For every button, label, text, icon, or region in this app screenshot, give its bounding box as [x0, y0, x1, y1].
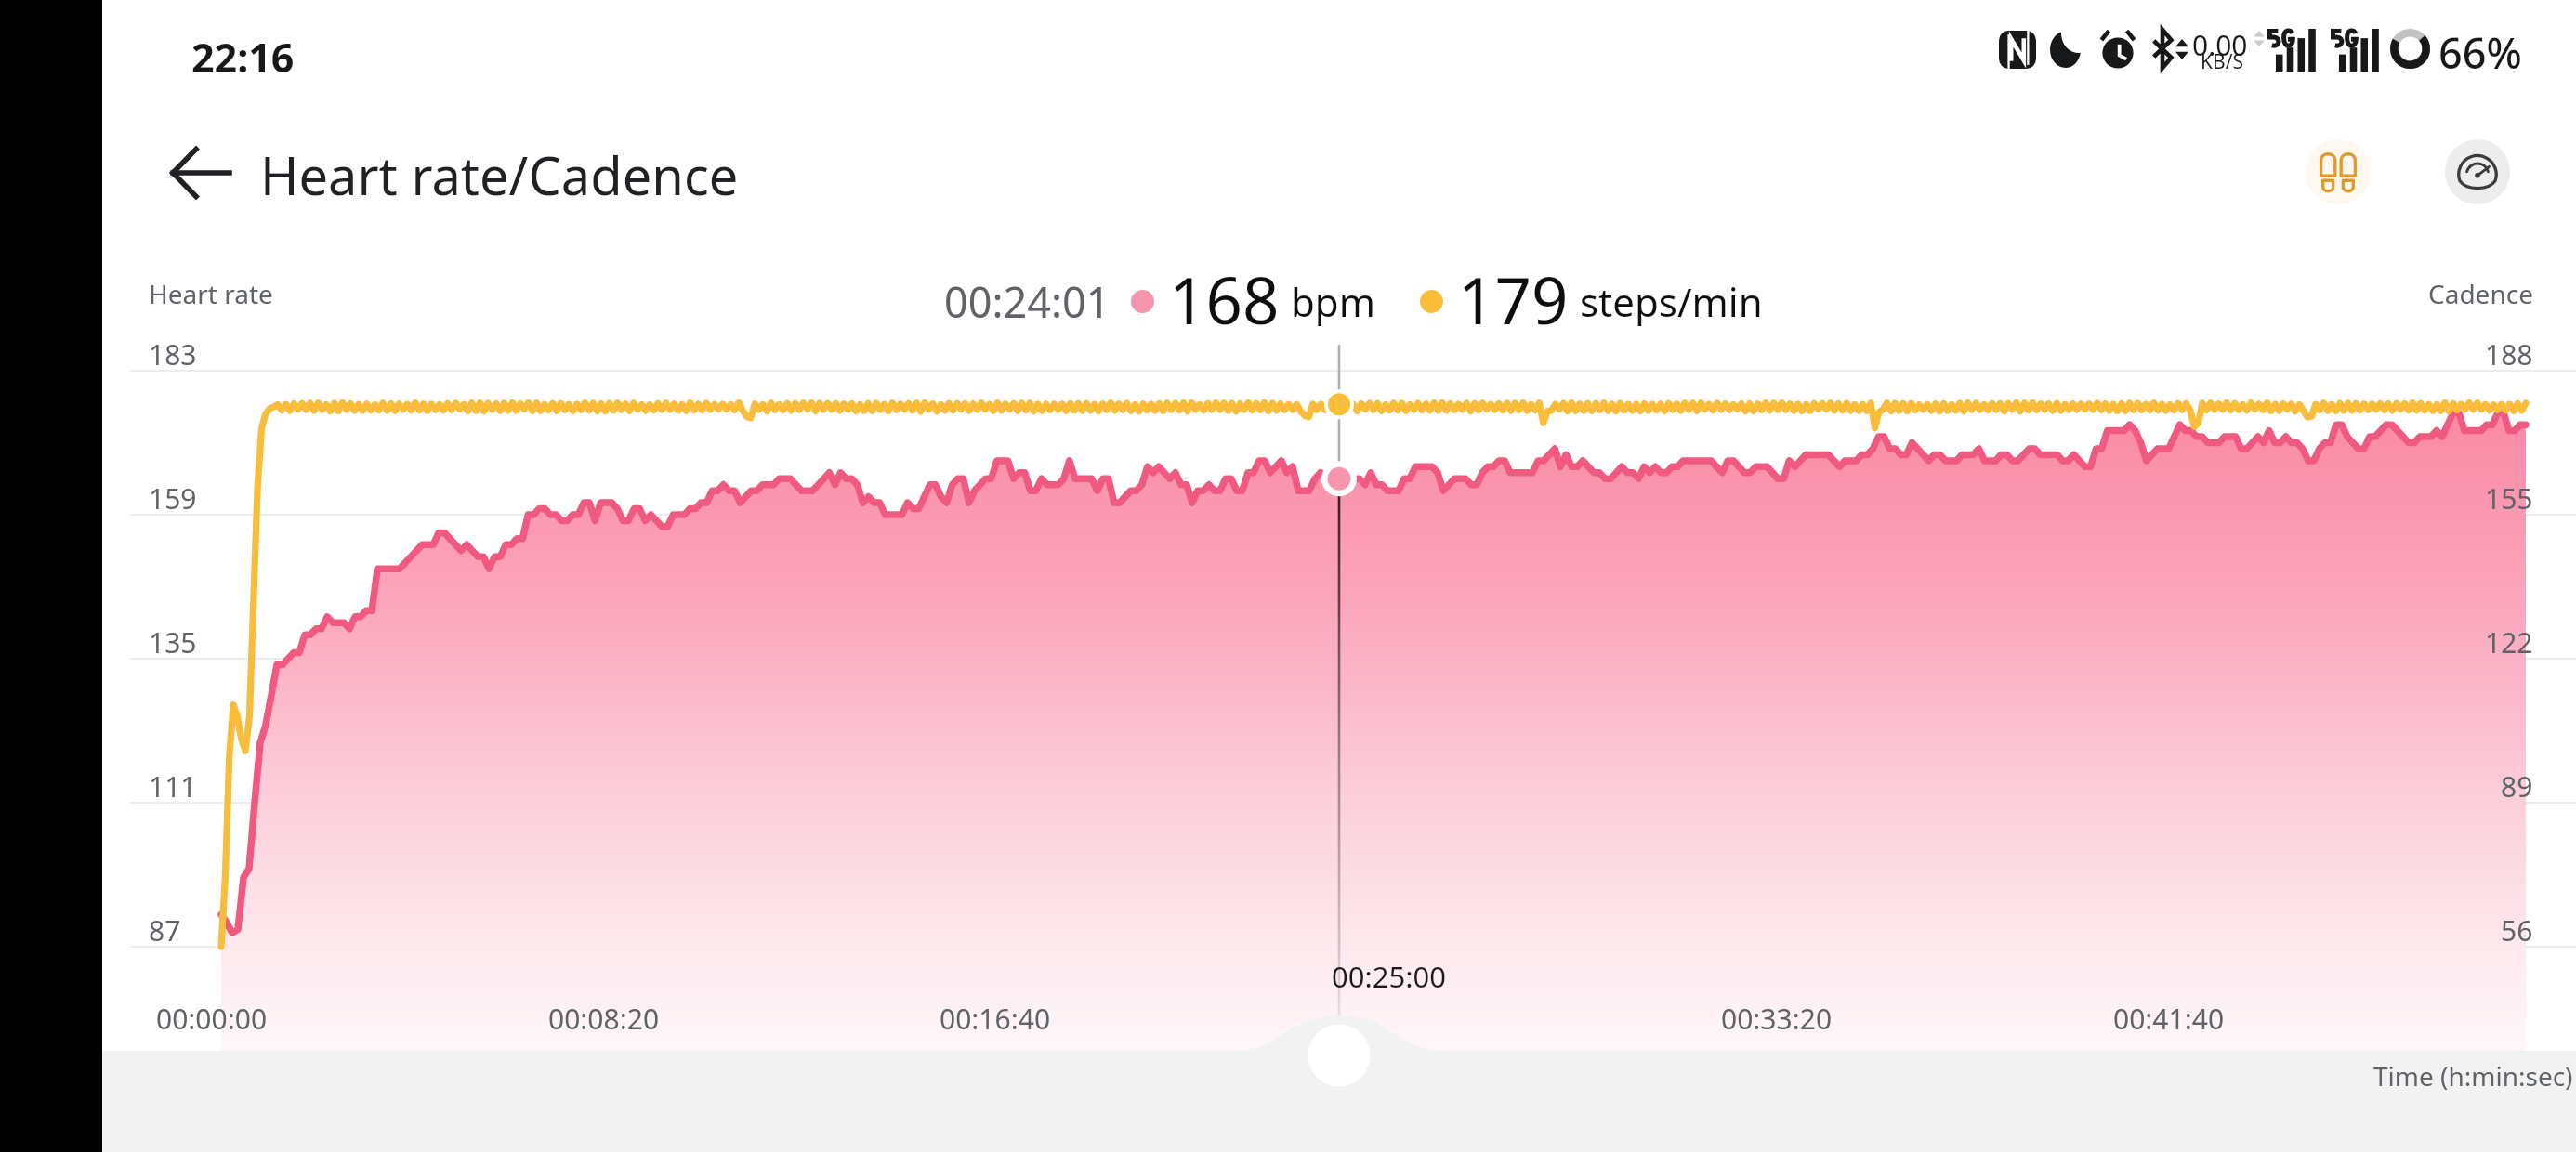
staticText: 00:24:01 — [944, 273, 1111, 330]
staticText: 122 — [2485, 623, 2533, 661]
staticText: 89 — [2501, 767, 2533, 805]
staticText: 168 — [1169, 255, 1280, 343]
staticText: Heart rate — [149, 276, 273, 311]
staticText: 188 — [2485, 335, 2533, 373]
button[interactable]: Cadence — [2306, 139, 2371, 204]
staticText: Cadence — [2428, 276, 2533, 311]
staticText: 155 — [2485, 479, 2533, 517]
staticText: 00:16:40 — [940, 1000, 1051, 1038]
staticText: 135 — [149, 623, 197, 661]
staticText: 183 — [149, 335, 197, 373]
staticText: 179 — [1458, 255, 1569, 343]
staticText: 00:00:00 — [156, 1000, 268, 1038]
staticText: 0.00 — [2192, 26, 2248, 64]
staticText: 00:25:00 — [1332, 957, 1447, 996]
staticText: Heart rate/Cadence — [260, 139, 739, 210]
staticText: 66% — [2438, 24, 2522, 81]
staticText: 87 — [149, 911, 181, 949]
button[interactable]: Back — [154, 126, 247, 219]
staticText: 111 — [149, 767, 197, 805]
staticText: KB/S — [2201, 48, 2243, 75]
button[interactable]: Speed — [2445, 139, 2510, 204]
staticText: 00:33:20 — [1721, 1000, 1833, 1038]
staticText: 00:08:20 — [548, 1000, 660, 1038]
staticText: steps/min — [1580, 275, 1763, 328]
staticText: Time (h:min:sec) — [2373, 1058, 2573, 1093]
staticText: bpm — [1291, 275, 1375, 328]
staticText: 22:16 — [191, 30, 295, 85]
staticText: 159 — [149, 479, 197, 517]
staticText: 00:41:40 — [2113, 1000, 2225, 1038]
staticText: 56 — [2501, 911, 2533, 949]
button[interactable]: Timeline scrubber — [1308, 1023, 1371, 1086]
